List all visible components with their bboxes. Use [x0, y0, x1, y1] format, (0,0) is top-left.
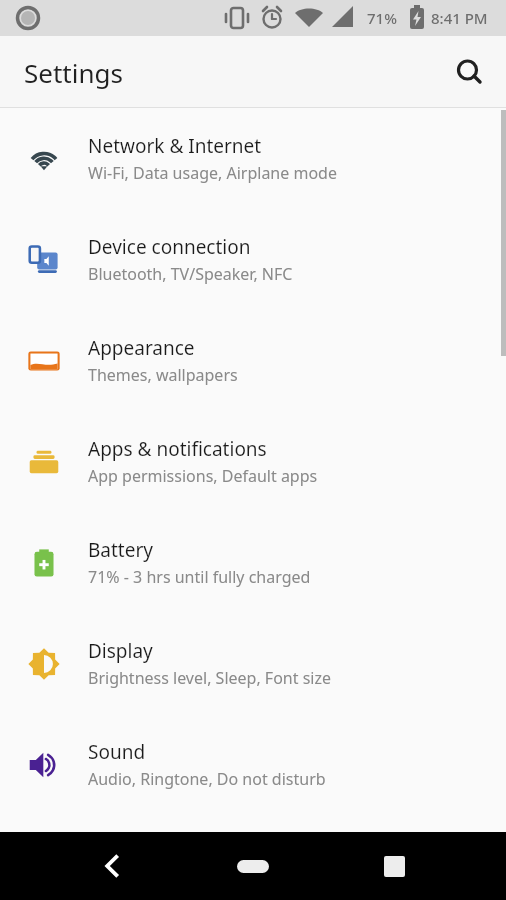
staticText: App permissions, Default apps: [88, 465, 318, 487]
staticText: Sound: [88, 739, 146, 765]
staticText: Audio, Ringtone, Do not disturb: [88, 768, 326, 790]
staticText: Brightness level, Sleep, Font size: [88, 667, 331, 689]
button[interactable]: Search: [445, 48, 493, 96]
staticText: Wi-Fi, Data usage, Airplane mode: [88, 162, 337, 184]
staticText: Themes, wallpapers: [88, 364, 238, 386]
staticText: Network & Internet: [88, 133, 262, 159]
staticText: Battery: [88, 537, 153, 563]
staticText: Display: [88, 638, 153, 664]
staticText: 8:41 PM: [431, 8, 488, 28]
button[interactable]: Display: [0, 613, 506, 714]
button[interactable]: Back: [88, 842, 136, 890]
button[interactable]: Sound: [0, 714, 506, 815]
button[interactable]: Appearance: [0, 310, 506, 411]
button[interactable]: Recent apps: [370, 842, 418, 890]
staticText: Appearance: [88, 335, 195, 361]
staticText: 71% - 3 hrs until fully charged: [88, 566, 311, 588]
staticText: 71%: [367, 8, 397, 28]
staticText: Settings: [24, 55, 123, 90]
button[interactable]: Home: [225, 838, 281, 894]
staticText: Apps & notifications: [88, 436, 267, 462]
button[interactable]: Battery: [0, 512, 506, 613]
staticText: Device connection: [88, 234, 251, 260]
button[interactable]: Network & Internet: [0, 108, 506, 209]
staticText: Bluetooth, TV/Speaker, NFC: [88, 263, 293, 285]
button[interactable]: Device connection: [0, 209, 506, 310]
button[interactable]: Apps & notifications: [0, 411, 506, 512]
